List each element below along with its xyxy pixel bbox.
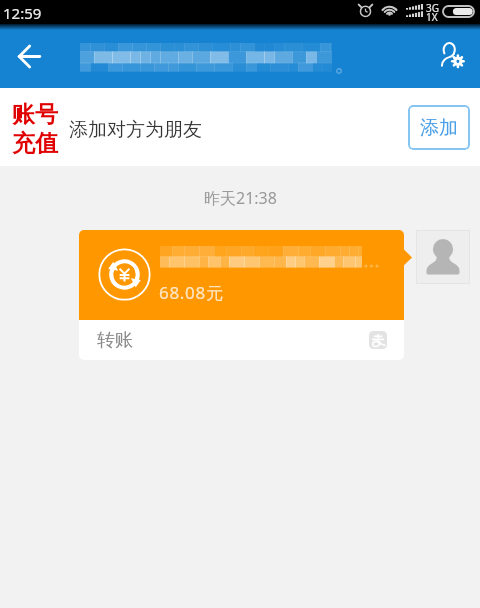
button[interactable]: Contact settings [422, 24, 480, 88]
staticText: 充值 [12, 129, 58, 158]
staticText: 转账 [97, 329, 133, 352]
staticText: 添加对方为朋友 [69, 118, 202, 142]
button[interactable]: 添加 [408, 105, 470, 150]
button[interactable]: Back [0, 24, 56, 88]
staticText: 添加 [420, 116, 458, 140]
staticText: 3G [426, 1, 439, 15]
button[interactable]: 68.08元 [79, 230, 404, 320]
other: Alipay [369, 331, 387, 349]
staticText: 12:59 [3, 3, 42, 23]
button[interactable]: Avatar [416, 230, 470, 284]
staticText: 1X [426, 10, 438, 24]
staticText: 昨天21:38 [204, 187, 277, 209]
staticText: 68.08元 [159, 281, 224, 304]
staticText: 账号 [12, 100, 58, 129]
